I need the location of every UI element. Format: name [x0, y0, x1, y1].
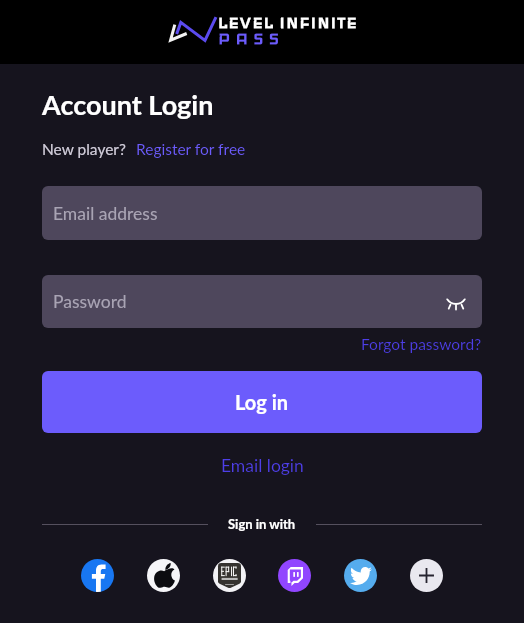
button[interactable]: Sign in with Apple — [147, 559, 180, 592]
button[interactable]: Show password — [441, 287, 471, 317]
staticText: PASS — [218, 28, 285, 48]
staticText: Email address — [53, 203, 158, 224]
button[interactable]: Sign in with Twitch — [278, 559, 311, 592]
button[interactable]: Email login — [221, 455, 304, 476]
button[interactable]: Password — [42, 275, 482, 328]
staticText: Password — [53, 291, 127, 312]
staticText: Email login — [221, 455, 304, 476]
staticText: Sign in with — [228, 516, 296, 532]
staticText: Register for free — [136, 140, 246, 159]
staticText: Account Login — [42, 88, 214, 120]
button[interactable]: Email address — [42, 186, 482, 240]
button[interactable]: Register for free — [136, 140, 246, 159]
button[interactable]: Forgot password? — [361, 335, 482, 354]
staticText: Forgot password? — [361, 335, 482, 354]
button[interactable]: Log in — [42, 371, 482, 433]
button[interactable]: Sign in with Facebook — [81, 559, 114, 592]
button[interactable]: Sign in with Epic Games — [213, 559, 246, 592]
button[interactable]: More sign in options — [410, 559, 443, 592]
staticText: LEVEL INFINITE — [218, 13, 358, 32]
staticText: New player? — [42, 140, 126, 159]
staticText: Log in — [235, 390, 289, 414]
button[interactable]: Sign in with Twitter — [344, 559, 377, 592]
